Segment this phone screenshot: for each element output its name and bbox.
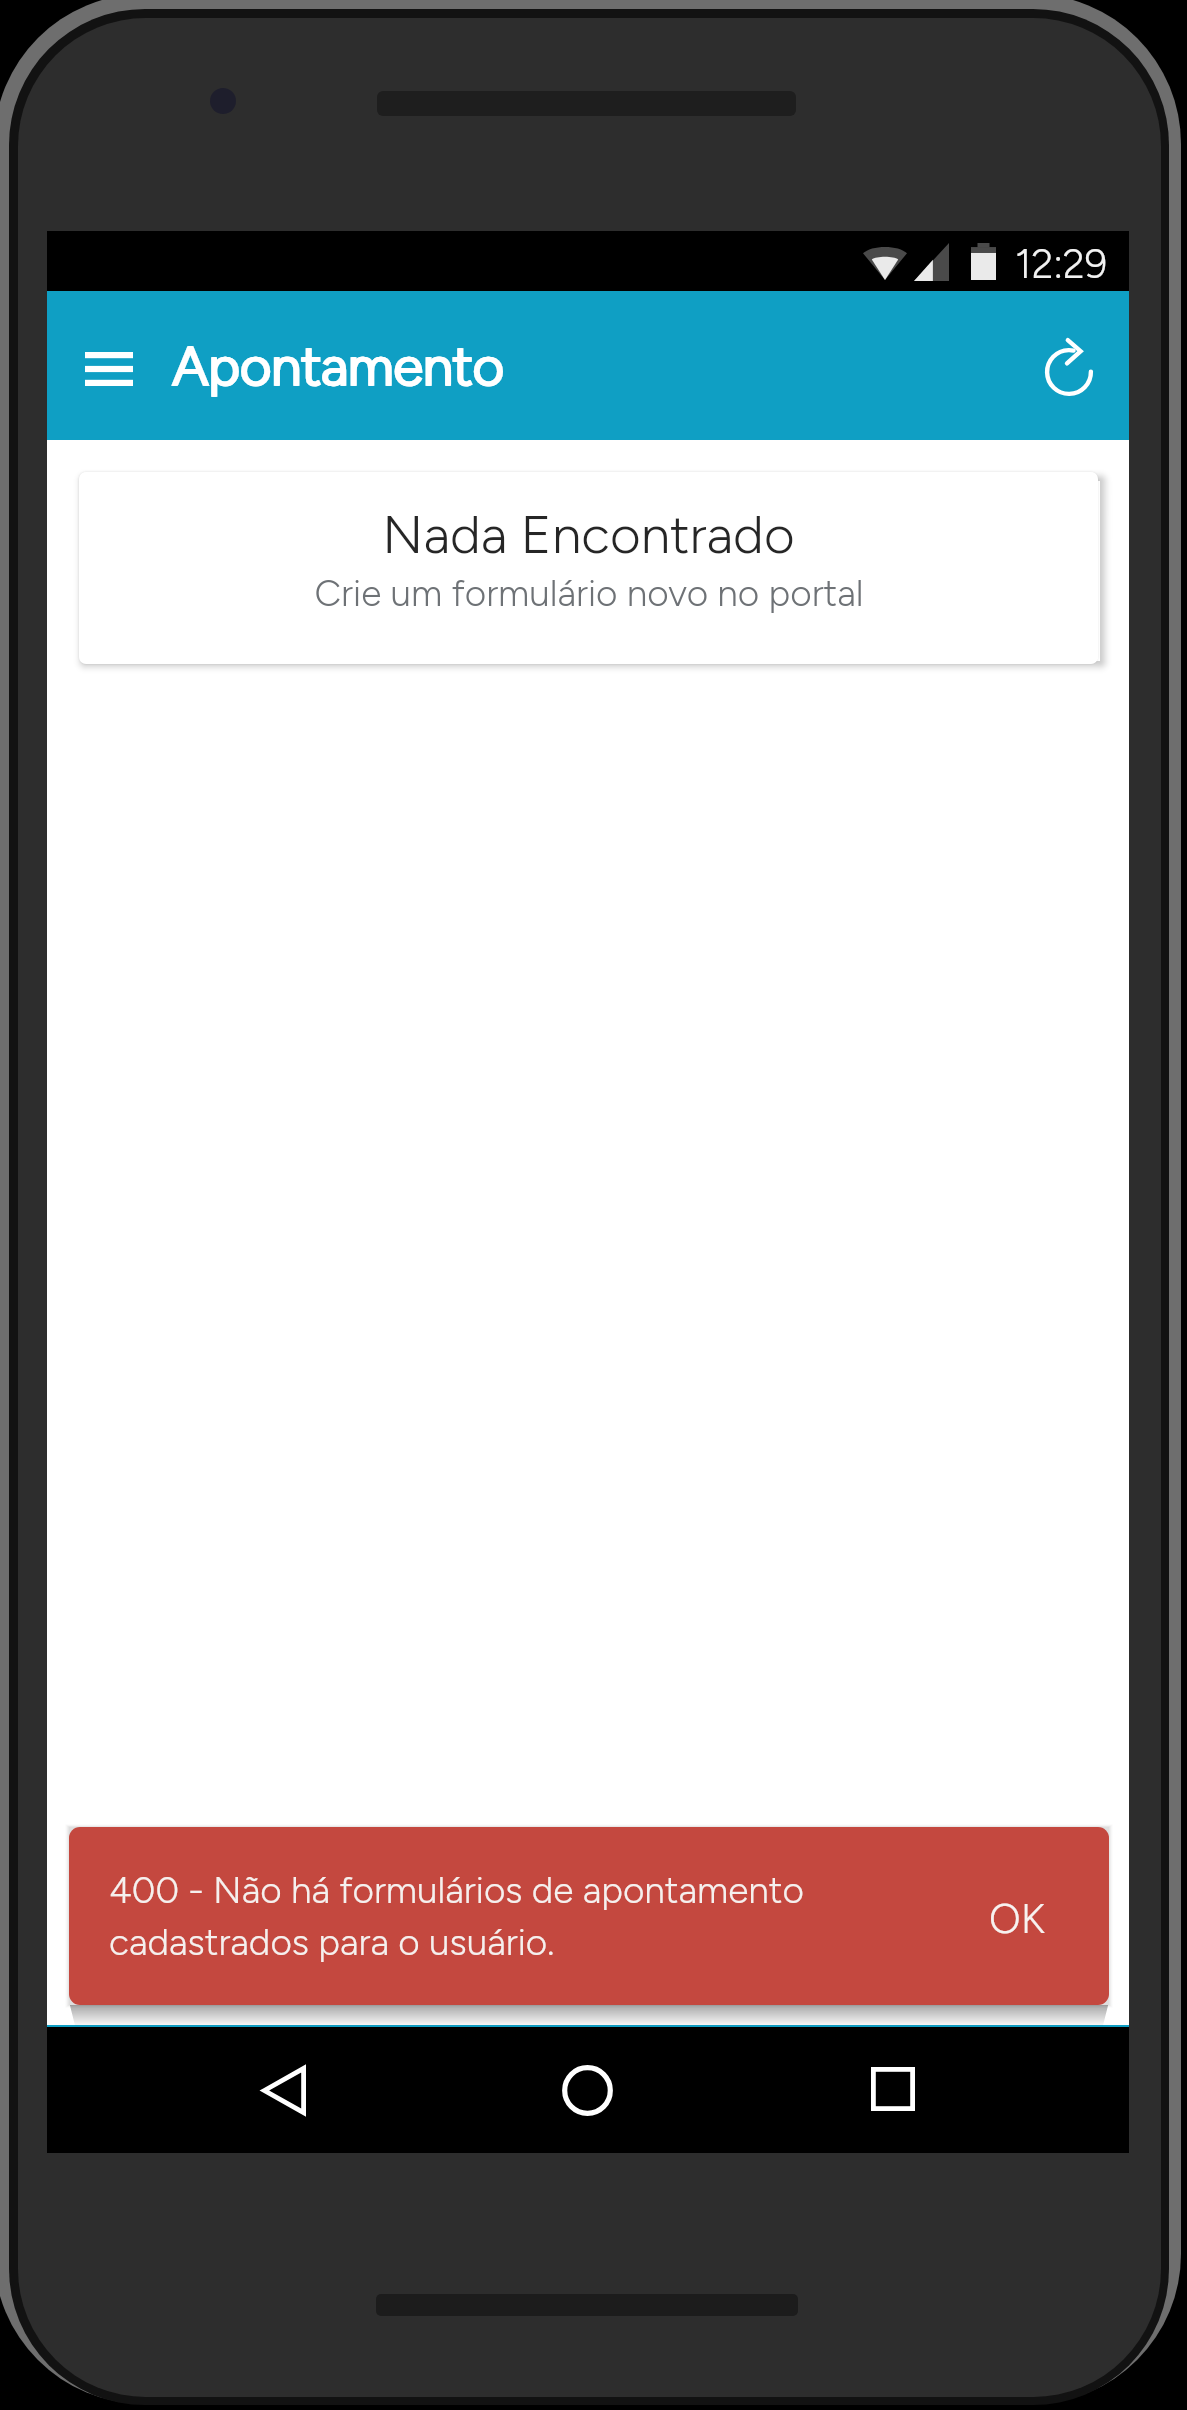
button[interactable]: Home: [539, 2042, 635, 2138]
button[interactable]: Recent apps: [845, 2041, 941, 2137]
button[interactable]: Nada Encontrado: [79, 472, 1098, 664]
staticText: Apontamento: [172, 334, 504, 399]
staticText: OK: [989, 1894, 1045, 1943]
staticText: 12:29: [1015, 240, 1108, 288]
button[interactable]: Open navigation menu: [62, 322, 156, 416]
staticText: Crie um formulário novo no portal: [314, 571, 864, 615]
staticText: Apontamento: [173, 334, 505, 399]
button[interactable]: Refresh: [1022, 325, 1116, 419]
button[interactable]: Back: [236, 2042, 332, 2138]
staticText: 400 - Não há formulários de apontamento …: [109, 1868, 819, 1964]
button[interactable]: OK: [957, 1861, 1077, 1971]
staticText: Nada Encontrado: [382, 503, 795, 567]
